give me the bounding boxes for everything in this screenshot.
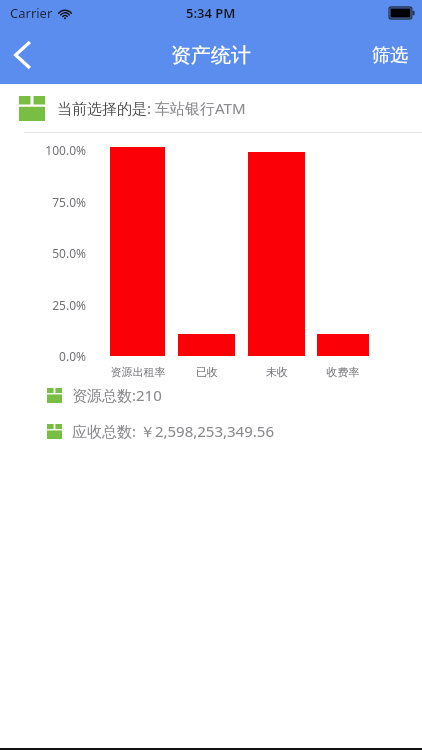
button[interactable]: 当前选择的是: (0, 84, 422, 132)
staticText: Carrier (10, 4, 53, 22)
staticText: 应收总数: ￥2,598,253,349.56 (72, 421, 274, 441)
staticText: 100.0% (24, 142, 86, 158)
staticText: 筛选 (372, 44, 408, 67)
staticText: 资源总数:210 (72, 385, 162, 405)
staticText: 收费率 (298, 365, 388, 379)
button[interactable]: 筛选 (358, 26, 422, 84)
staticText: 50.0% (24, 245, 86, 261)
staticText: 资产统计 (171, 43, 251, 68)
button[interactable]: 资源总数:210 (0, 385, 422, 405)
staticText: 5:34 PM (186, 4, 236, 22)
button[interactable]: 应收总数: ￥2,598,253,349.56 (0, 421, 422, 441)
staticText: 75.0% (24, 194, 86, 210)
staticText: 资源出租率 (93, 365, 183, 379)
staticText: 25.0% (24, 297, 86, 313)
staticText: 未收 (232, 365, 322, 379)
staticText: 0.0% (24, 348, 86, 364)
staticText: 已收 (162, 365, 252, 379)
staticText: 当前选择的是: (57, 98, 155, 118)
staticText: 车站银行ATM (155, 98, 246, 118)
button[interactable]: Back (0, 26, 52, 84)
